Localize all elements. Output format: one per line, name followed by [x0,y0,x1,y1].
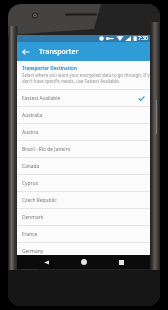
button[interactable]: Recent apps [113,255,129,269]
button[interactable]: Austria [17,124,150,140]
button[interactable]: Denmark [17,209,150,225]
button[interactable]: Home [76,255,92,269]
button[interactable]: Brazil - Rio de Janeiro [17,141,150,157]
staticText: Transporter [39,47,79,57]
button[interactable]: Cyprus [17,175,150,191]
button[interactable]: Fastest Available [17,90,150,106]
button[interactable]: France [17,226,150,242]
staticText: Australia [22,112,43,119]
staticText: Canada [22,163,40,170]
staticText: Austria [22,129,39,136]
staticText: Transporter Destination [22,65,77,71]
button[interactable]: Greece [17,260,150,276]
button[interactable]: Back [38,255,54,269]
staticText: Cyprus [22,180,38,187]
button[interactable]: Canada [17,158,150,174]
button[interactable]: Navigate up [17,42,35,61]
staticText: Fastest Available [22,95,61,102]
button[interactable]: Czech Republic [17,192,150,208]
staticText: don't have specific needs, use Fastest A… [22,78,120,84]
staticText: Czech Republic [22,197,57,204]
staticText: Brazil - Rio de Janeiro [22,146,71,153]
staticText: 7:30 [138,35,148,42]
staticText: France [22,231,38,238]
staticText: Denmark [22,214,44,221]
button[interactable]: Germany [17,243,150,259]
button[interactable]: Australia [17,107,150,123]
staticText: Select where you want your encrypted dat… [22,72,150,78]
staticText: Germany [22,248,44,255]
staticText: Greece [22,265,39,272]
